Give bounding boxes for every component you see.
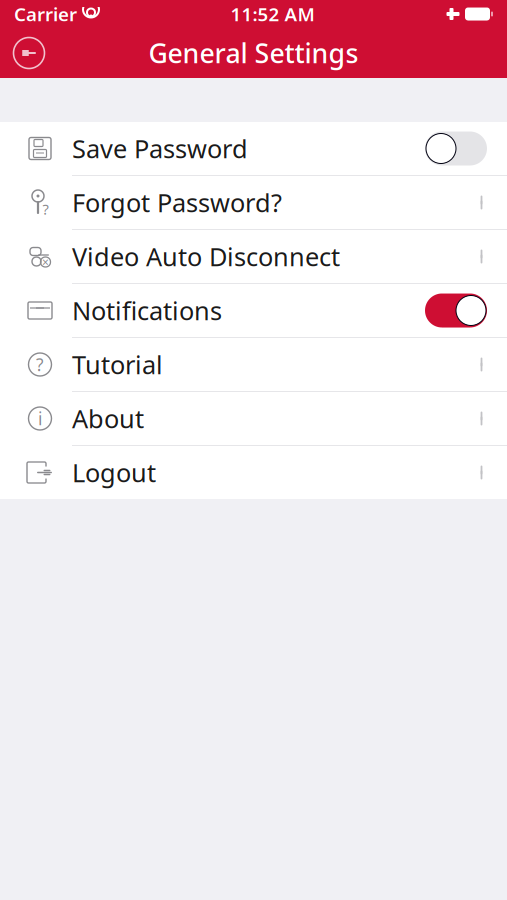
staticText: Notifications [72,294,222,327]
button[interactable]: Save Password [0,122,507,176]
button[interactable]: i [0,392,507,446]
staticText: About [72,402,144,435]
staticText: ? [36,353,44,376]
staticText: General Settings [148,35,358,71]
staticText: Forgot Password? [72,186,282,219]
staticText: Tutorial [72,348,163,381]
staticText: Logout [72,456,156,489]
staticText: Carrier [14,2,77,26]
button[interactable]: Notifications [0,284,507,338]
button[interactable]: × [0,230,507,284]
button[interactable]: Back [9,33,49,73]
staticText: Video Auto Disconnect [72,240,340,273]
button[interactable]: Logout [0,446,507,499]
staticText: ? [42,199,48,219]
staticText: i [38,407,42,430]
button[interactable]: ? [0,338,507,392]
staticText: × [42,254,49,270]
button[interactable]: ? [0,176,507,230]
staticText: Save Password [72,132,248,165]
staticText: 11:52 AM [230,2,314,26]
